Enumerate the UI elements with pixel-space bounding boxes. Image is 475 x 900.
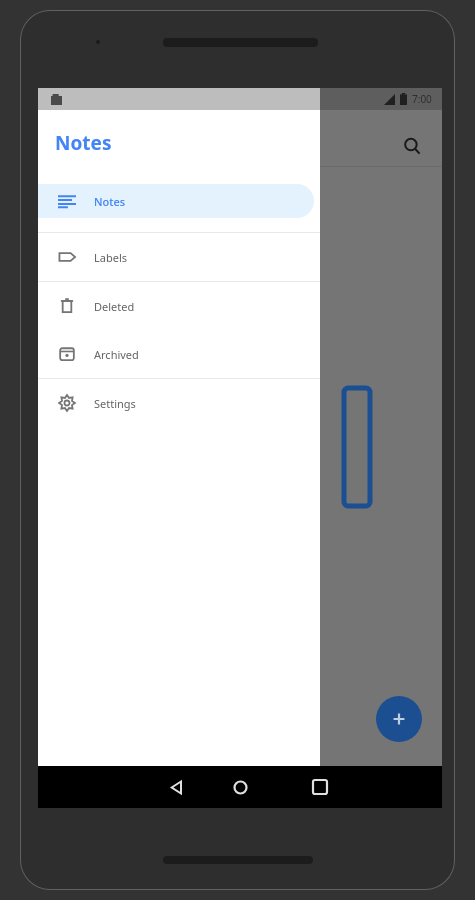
staticText: Archived [94, 347, 139, 362]
staticText: Deleted [94, 299, 135, 314]
staticText: Settings [94, 396, 136, 411]
staticText: Notes [94, 194, 126, 209]
staticText: Notes [55, 130, 112, 156]
button[interactable]: Labels [38, 233, 320, 281]
staticText: 7:00 [412, 92, 432, 106]
button[interactable]: Recents [290, 766, 350, 808]
button[interactable]: Add note [376, 696, 422, 742]
staticText: Labels [94, 250, 128, 265]
button[interactable]: Home [210, 766, 270, 808]
button[interactable]: Back [146, 766, 206, 808]
button[interactable]: Archived [38, 330, 320, 378]
button[interactable]: Notes [38, 184, 314, 218]
button[interactable]: Deleted [38, 282, 320, 330]
button[interactable]: Search [394, 128, 430, 164]
button[interactable]: Settings [38, 379, 320, 427]
